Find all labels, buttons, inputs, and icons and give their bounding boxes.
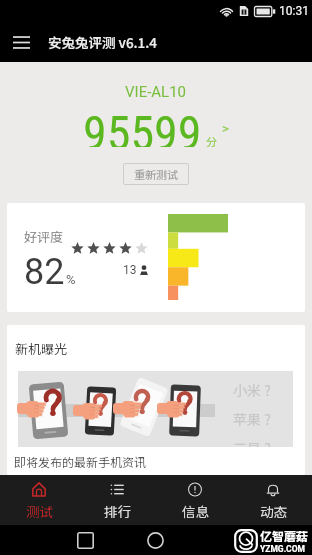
button[interactable]: Home (140, 525, 170, 555)
staticText: % (66, 272, 76, 287)
button[interactable]: 重新测试 (123, 163, 189, 185)
staticText: 小米 ? (233, 380, 271, 400)
staticText: 安兔兔评测 v6.1.4 (48, 32, 158, 52)
button[interactable]: 信息 (156, 475, 234, 525)
button[interactable]: 动态 (234, 475, 312, 525)
staticText: 三星 ? (233, 438, 271, 447)
button[interactable]: Menu (0, 22, 42, 62)
button[interactable]: 新机曝光 (7, 325, 305, 475)
staticText: 亿智蘑菇 (260, 527, 309, 544)
staticText: 新机曝光 (15, 339, 68, 358)
staticText: 信息 (182, 501, 209, 521)
staticText: 重新测试 (134, 166, 178, 182)
staticText: 排行 (104, 501, 131, 521)
staticText: 测试 (26, 501, 53, 521)
staticText: VIE-AL10 (125, 83, 187, 101)
staticText: 13 (123, 263, 137, 277)
button[interactable]: Recents (70, 525, 100, 555)
button[interactable]: 测试 (0, 475, 78, 525)
staticText: 好评度 (24, 227, 64, 246)
staticText: 即将发布的最新手机资讯 (14, 453, 147, 470)
button[interactable]: 排行 (78, 475, 156, 525)
staticText: YZMG.COM (260, 544, 305, 554)
staticText: 95599 (83, 105, 202, 147)
button[interactable]: 好评度 (7, 203, 305, 312)
staticText: 分 (206, 133, 217, 147)
staticText: 苹果 ? (233, 409, 271, 429)
staticText: 82 (24, 251, 65, 293)
staticText: 10:31 (279, 4, 309, 18)
staticText: 动态 (260, 501, 287, 521)
staticText: > (222, 121, 229, 136)
